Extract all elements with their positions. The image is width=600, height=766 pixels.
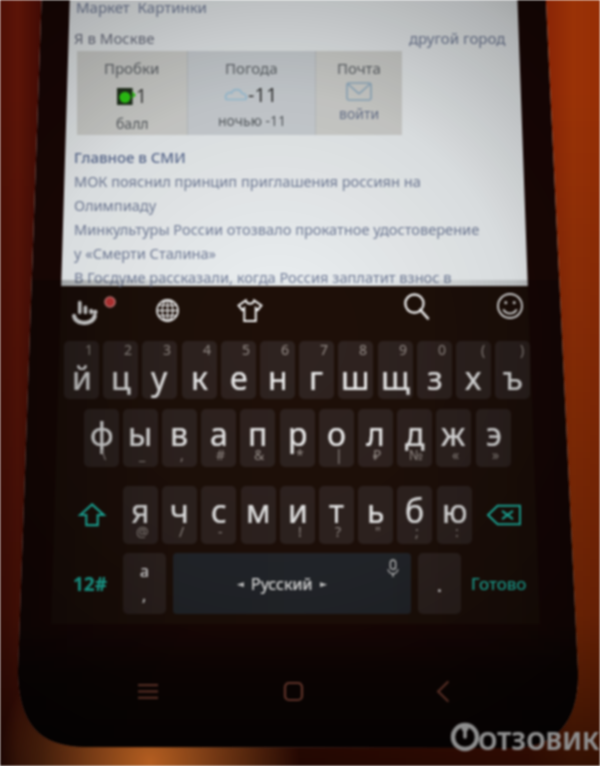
staticText: .: [437, 573, 442, 598]
staticText: у: [151, 356, 168, 399]
button[interactable]: Почта: [316, 51, 402, 135]
button[interactable]: м: [241, 486, 276, 544]
button[interactable]: Backspace: [474, 486, 533, 544]
button[interactable]: 3: [142, 341, 177, 399]
staticText: 9: [399, 341, 408, 359]
staticText: 12#: [73, 571, 108, 597]
staticText: Готово: [471, 572, 527, 595]
button[interactable]: с: [201, 486, 236, 544]
button[interactable]: Language: [145, 288, 189, 332]
button[interactable]: 4: [182, 341, 217, 399]
staticText: балл: [116, 114, 149, 133]
button[interactable]: я: [123, 486, 158, 544]
button[interactable]: ь: [358, 486, 393, 544]
staticText: м: [246, 489, 271, 533]
staticText: ОТЗОВИК: [478, 723, 600, 757]
button[interactable]: а: [201, 409, 236, 467]
button[interactable]: р: [280, 409, 315, 467]
staticText: ю: [442, 489, 468, 533]
staticText: Минкультуры России отозвало прокатное уд…: [74, 219, 480, 239]
staticText: э: [486, 412, 502, 456]
staticText: Я в Москве: [74, 28, 155, 48]
button[interactable]: 1: [64, 341, 99, 399]
button[interactable]: ж: [436, 409, 471, 467]
staticText: с: [211, 489, 227, 533]
staticText: е: [230, 356, 248, 399]
staticText: \: [101, 445, 107, 464]
staticText: н: [268, 356, 288, 399]
staticText: -11: [248, 81, 278, 108]
staticText: !: [298, 522, 302, 541]
staticText: 8: [359, 341, 368, 359]
staticText: (: [481, 341, 486, 359]
button[interactable]: Keyboard settings: [63, 289, 107, 333]
button[interactable]: Home: [245, 668, 341, 714]
button[interactable]: д: [397, 409, 432, 467]
button[interactable]: э: [476, 409, 511, 467]
button[interactable]: (: [456, 341, 491, 399]
staticText: ;: [415, 522, 419, 541]
staticText: &: [254, 445, 265, 464]
button[interactable]: ф: [84, 409, 119, 467]
button[interactable]: a: [123, 553, 166, 614]
staticText: _: [139, 445, 146, 464]
staticText: |: [335, 445, 343, 464]
button[interactable]: Emoji: [488, 284, 532, 328]
staticText: ₽: [373, 445, 382, 464]
button[interactable]: 9: [378, 341, 413, 399]
button[interactable]: Menu: [100, 668, 196, 714]
staticText: а: [210, 412, 228, 456]
button[interactable]: ч: [162, 486, 197, 544]
button[interactable]: и: [280, 486, 315, 544]
button[interactable]: Погода: [188, 51, 315, 135]
staticText: Русский: [251, 573, 313, 595]
button[interactable]: 8: [338, 341, 373, 399]
button[interactable]: ю: [437, 486, 472, 544]
staticText: ч: [170, 489, 189, 533]
staticText: ,: [142, 584, 147, 606]
staticText: к: [191, 356, 208, 399]
staticText: #: [216, 445, 226, 464]
button[interactable]: 6: [260, 341, 295, 399]
button[interactable]: л: [358, 409, 393, 467]
staticText: Олимпиаду: [74, 195, 157, 215]
button[interactable]: ◄: [173, 553, 411, 614]
button[interactable]: Back: [395, 668, 491, 714]
button[interactable]: ы: [123, 409, 158, 467]
staticText: 4: [203, 341, 212, 359]
staticText: ь: [367, 489, 385, 533]
button[interactable]: 0: [417, 341, 452, 399]
staticText: »: [492, 445, 500, 464]
staticText: ): [520, 341, 525, 359]
button[interactable]: 5: [221, 341, 256, 399]
button[interactable]: .: [418, 553, 461, 614]
button[interactable]: 2: [103, 341, 138, 399]
staticText: ►: [320, 579, 327, 589]
button[interactable]: Themes: [228, 288, 272, 332]
button[interactable]: 12#: [62, 553, 119, 614]
staticText: /: [179, 522, 185, 541]
staticText: 2: [124, 341, 133, 359]
button[interactable]: 7: [299, 341, 334, 399]
staticText: Главное в СМИ: [74, 147, 186, 167]
staticText: @: [136, 522, 149, 541]
staticText: п: [248, 412, 268, 456]
button[interactable]: Shift: [62, 486, 121, 544]
button[interactable]: б: [397, 486, 432, 544]
staticText: 7: [320, 341, 329, 359]
button[interactable]: Пробки: [77, 51, 187, 135]
staticText: «: [452, 445, 460, 464]
staticText: a: [140, 560, 149, 582]
button[interactable]: т: [319, 486, 354, 544]
button[interactable]: Search: [395, 285, 439, 329]
button[interactable]: в: [162, 409, 197, 467]
button[interactable]: п: [240, 409, 275, 467]
staticText: у «Смерти Сталина»: [74, 243, 216, 263]
button[interactable]: ): [495, 341, 530, 399]
staticText: з: [427, 356, 443, 399]
staticText: в: [170, 412, 189, 456]
button[interactable]: Готово: [466, 553, 532, 614]
staticText: 6: [281, 341, 290, 359]
staticText: Пробки: [104, 58, 160, 78]
button[interactable]: о: [319, 409, 354, 467]
